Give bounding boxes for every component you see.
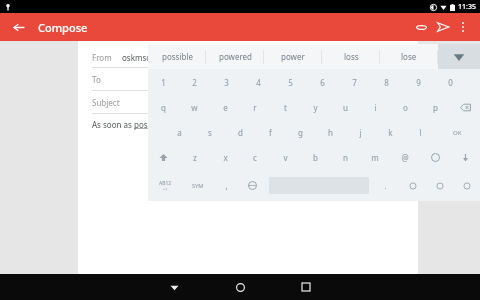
- staticText: poss: [134, 119, 152, 130]
- staticText: o: [403, 102, 408, 113]
- button[interactable]: Enter: [453, 170, 480, 201]
- button[interactable]: a: [164, 120, 195, 145]
- button[interactable]: c: [240, 145, 270, 170]
- button[interactable]: Home: [220, 274, 260, 300]
- staticText: x: [223, 152, 228, 163]
- staticText: t: [284, 102, 287, 113]
- button[interactable]: SYM: [182, 170, 213, 201]
- button[interactable]: Voice input: [426, 170, 453, 201]
- staticText: c: [253, 152, 257, 163]
- button[interactable]: lose: [380, 44, 438, 69]
- staticText: d: [238, 127, 243, 138]
- button[interactable]: @: [390, 145, 420, 170]
- button[interactable]: From: [92, 47, 404, 67]
- button[interactable]: x: [210, 145, 240, 170]
- staticText: n: [343, 152, 348, 163]
- button[interactable]: possible: [148, 44, 206, 69]
- button[interactable]: h: [315, 120, 345, 145]
- button[interactable]: Back: [8, 17, 28, 37]
- button[interactable]: k: [375, 120, 405, 145]
- staticText: 8: [384, 77, 389, 88]
- button[interactable]: y: [300, 95, 330, 120]
- button[interactable]: Hide suggestions: [438, 44, 480, 69]
- button[interactable]: ,: [213, 170, 239, 201]
- staticText: f: [269, 127, 272, 138]
- staticText: SYM: [192, 182, 204, 189]
- staticText: i: [374, 102, 377, 113]
- staticText: 9: [416, 77, 421, 88]
- button[interactable]: 3: [210, 69, 242, 95]
- button[interactable]: s: [195, 120, 225, 145]
- staticText: h: [328, 127, 333, 138]
- button[interactable]: powered: [206, 44, 264, 69]
- staticText: AB12: [159, 180, 172, 187]
- button[interactable]: w: [179, 95, 210, 120]
- button[interactable]: 2: [179, 69, 210, 95]
- button[interactable]: u: [330, 95, 360, 120]
- button[interactable]: Language: [239, 170, 266, 201]
- button[interactable]: 9: [402, 69, 434, 95]
- staticText: oskmsownninfo@gmail.com: [122, 52, 229, 63]
- button[interactable]: l: [405, 120, 435, 145]
- button[interactable]: loss: [322, 44, 380, 69]
- button[interactable]: z: [179, 145, 210, 170]
- button[interactable]: Backspace: [450, 95, 480, 120]
- button[interactable]: Shift: [148, 145, 179, 170]
- button[interactable]: power: [264, 44, 322, 69]
- staticText: q: [161, 102, 166, 113]
- button[interactable]: 6: [306, 69, 338, 95]
- staticText: v: [283, 152, 288, 163]
- button[interactable]: e: [210, 95, 240, 120]
- button[interactable]: 1: [148, 69, 179, 95]
- staticText: power: [281, 51, 305, 62]
- button[interactable]: i: [360, 95, 390, 120]
- button[interactable]: 4: [242, 69, 274, 95]
- button[interactable]: OK: [435, 120, 480, 145]
- button[interactable]: q: [148, 95, 179, 120]
- button[interactable]: m: [360, 145, 390, 170]
- button[interactable]: 8: [370, 69, 402, 95]
- button[interactable]: Subject: [92, 91, 404, 113]
- button[interactable]: b: [300, 145, 330, 170]
- button[interactable]: o: [390, 95, 420, 120]
- button[interactable]: To: [92, 68, 404, 90]
- button[interactable]: AB12: [148, 170, 182, 201]
- staticText: s: [208, 127, 212, 138]
- button[interactable]: g: [285, 120, 315, 145]
- staticText: p: [433, 102, 438, 113]
- staticText: Subject: [92, 97, 120, 108]
- button[interactable]: n: [330, 145, 360, 170]
- staticText: 4: [256, 77, 261, 88]
- button[interactable]: d: [225, 120, 255, 145]
- staticText: 3: [224, 77, 229, 88]
- button[interactable]: 0: [434, 69, 466, 95]
- staticText: Compose: [38, 20, 88, 35]
- button[interactable]: Settings: [399, 170, 426, 201]
- staticText: lose: [401, 51, 417, 62]
- button[interactable]: 5: [274, 69, 306, 95]
- button[interactable]: f: [255, 120, 285, 145]
- staticText: j: [359, 127, 362, 138]
- button[interactable]: Hide keyboard: [450, 145, 480, 170]
- button[interactable]: Back: [154, 274, 194, 300]
- button[interactable]: Emoji: [420, 145, 450, 170]
- staticText: As soon as: [92, 119, 134, 130]
- button[interactable]: r: [240, 95, 270, 120]
- button[interactable]: 7: [338, 69, 370, 95]
- staticText: b: [313, 152, 318, 163]
- button[interactable]: t: [270, 95, 300, 120]
- staticText: a: [177, 127, 182, 138]
- staticText: @: [401, 152, 409, 163]
- button[interactable]: v: [270, 145, 300, 170]
- button[interactable]: Recent apps: [286, 274, 326, 300]
- button[interactable]: Attach file: [410, 16, 432, 38]
- staticText: l: [419, 127, 422, 138]
- button[interactable]: j: [345, 120, 375, 145]
- staticText: y: [313, 102, 318, 113]
- button[interactable]: Send: [432, 16, 454, 38]
- button[interactable]: p: [420, 95, 450, 120]
- button[interactable]: More options: [454, 18, 472, 36]
- staticText: 11:35: [458, 2, 476, 12]
